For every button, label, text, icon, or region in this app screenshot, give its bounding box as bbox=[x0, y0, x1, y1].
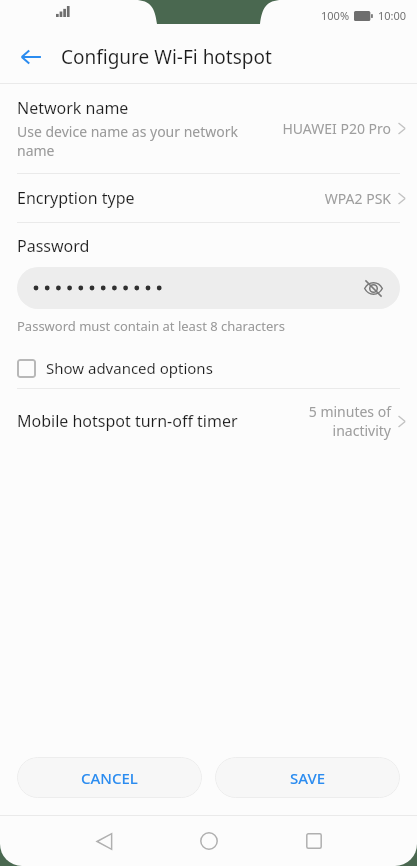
button[interactable]: CANCEL bbox=[17, 757, 202, 798]
staticText: Use device name as your network name bbox=[17, 122, 274, 160]
button[interactable]: Encryption type bbox=[0, 174, 417, 222]
staticText: Password must contain at least 8 charact… bbox=[17, 317, 285, 335]
button[interactable]: Show advanced options bbox=[0, 350, 417, 388]
staticText: 5 minutes of inactivity bbox=[295, 402, 391, 440]
staticText: HUAWEI P20 Pro bbox=[282, 119, 391, 138]
button[interactable]: Show password bbox=[17, 267, 400, 309]
button[interactable]: SAVE bbox=[215, 757, 400, 798]
staticText: Encryption type bbox=[17, 187, 135, 209]
staticText: Configure Wi-Fi hotspot bbox=[61, 44, 272, 70]
button[interactable]: Back bbox=[9, 35, 53, 79]
staticText: Network name bbox=[17, 97, 129, 119]
staticText: Show advanced options bbox=[46, 358, 213, 378]
button[interactable]: Back bbox=[81, 818, 127, 864]
staticText: Mobile hotspot turn-off timer bbox=[17, 410, 238, 432]
staticText: CANCEL bbox=[81, 768, 138, 788]
button[interactable]: Home bbox=[186, 818, 232, 864]
staticText: 100% bbox=[321, 8, 350, 23]
button[interactable]: Show password bbox=[360, 275, 386, 301]
staticText: Password bbox=[17, 235, 90, 257]
button[interactable]: Network name bbox=[0, 84, 417, 173]
button[interactable]: Mobile hotspot turn-off timer bbox=[0, 389, 417, 453]
staticText: 10:00 bbox=[378, 8, 407, 23]
staticText: WPA2 PSK bbox=[324, 189, 391, 208]
button[interactable]: Recent apps bbox=[291, 818, 337, 864]
staticText: SAVE bbox=[290, 768, 326, 788]
